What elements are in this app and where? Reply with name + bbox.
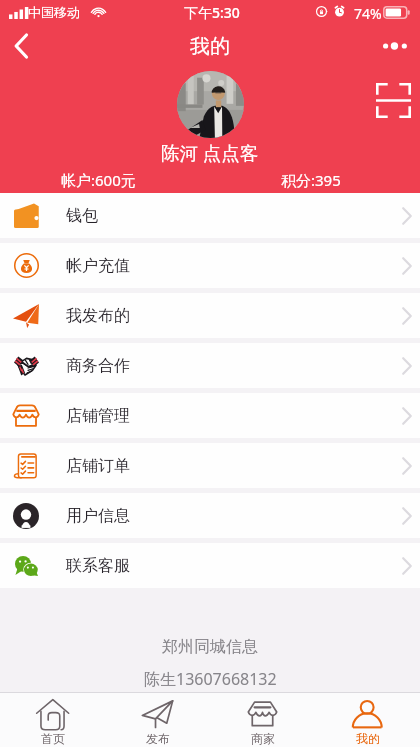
button[interactable] [177,71,244,138]
staticText: 店铺订单 [66,456,130,476]
staticText: 陈河 点点客 [161,140,259,165]
staticText: 商家 [251,731,275,746]
button[interactable]: 我的 [315,693,420,747]
button[interactable]: 商家 [210,693,315,747]
button[interactable]: 店铺管理 [0,393,420,438]
button[interactable]: 帐户充值 [0,243,420,288]
button[interactable]: Back [0,24,44,68]
staticText: 我的 [356,731,380,746]
staticText: 帐户充值 [66,256,130,276]
button[interactable]: 联系客服 [0,543,420,588]
staticText: 首页 [41,731,65,746]
button[interactable]: More options [372,24,420,68]
staticText: 74% [354,4,382,23]
button[interactable]: 发布 [105,693,210,747]
staticText: 联系客服 [66,556,130,576]
staticText: 用户信息 [66,506,130,526]
staticText: 发布 [146,731,170,746]
button[interactable]: 钱包 [0,193,420,238]
staticText: 中国移动 [28,4,80,20]
button[interactable]: 用户信息 [0,493,420,538]
button[interactable]: Scan QR code [371,78,415,122]
staticText: 我的 [190,34,230,59]
staticText: 店铺管理 [66,406,130,426]
staticText: 商务合作 [66,356,130,376]
button[interactable]: 店铺订单 [0,443,420,488]
button[interactable]: 首页 [0,693,105,747]
button[interactable]: 我发布的 [0,293,420,338]
staticText: 钱包 [66,206,98,226]
staticText: 陈生13607668132 [144,668,277,690]
staticText: 郑州同城信息 [162,637,258,657]
staticText: 帐户:600元 [61,170,136,190]
staticText: 下午5:30 [184,3,240,22]
button[interactable]: 商务合作 [0,343,420,388]
staticText: 积分:395 [281,170,341,190]
staticText: 我发布的 [66,306,130,326]
